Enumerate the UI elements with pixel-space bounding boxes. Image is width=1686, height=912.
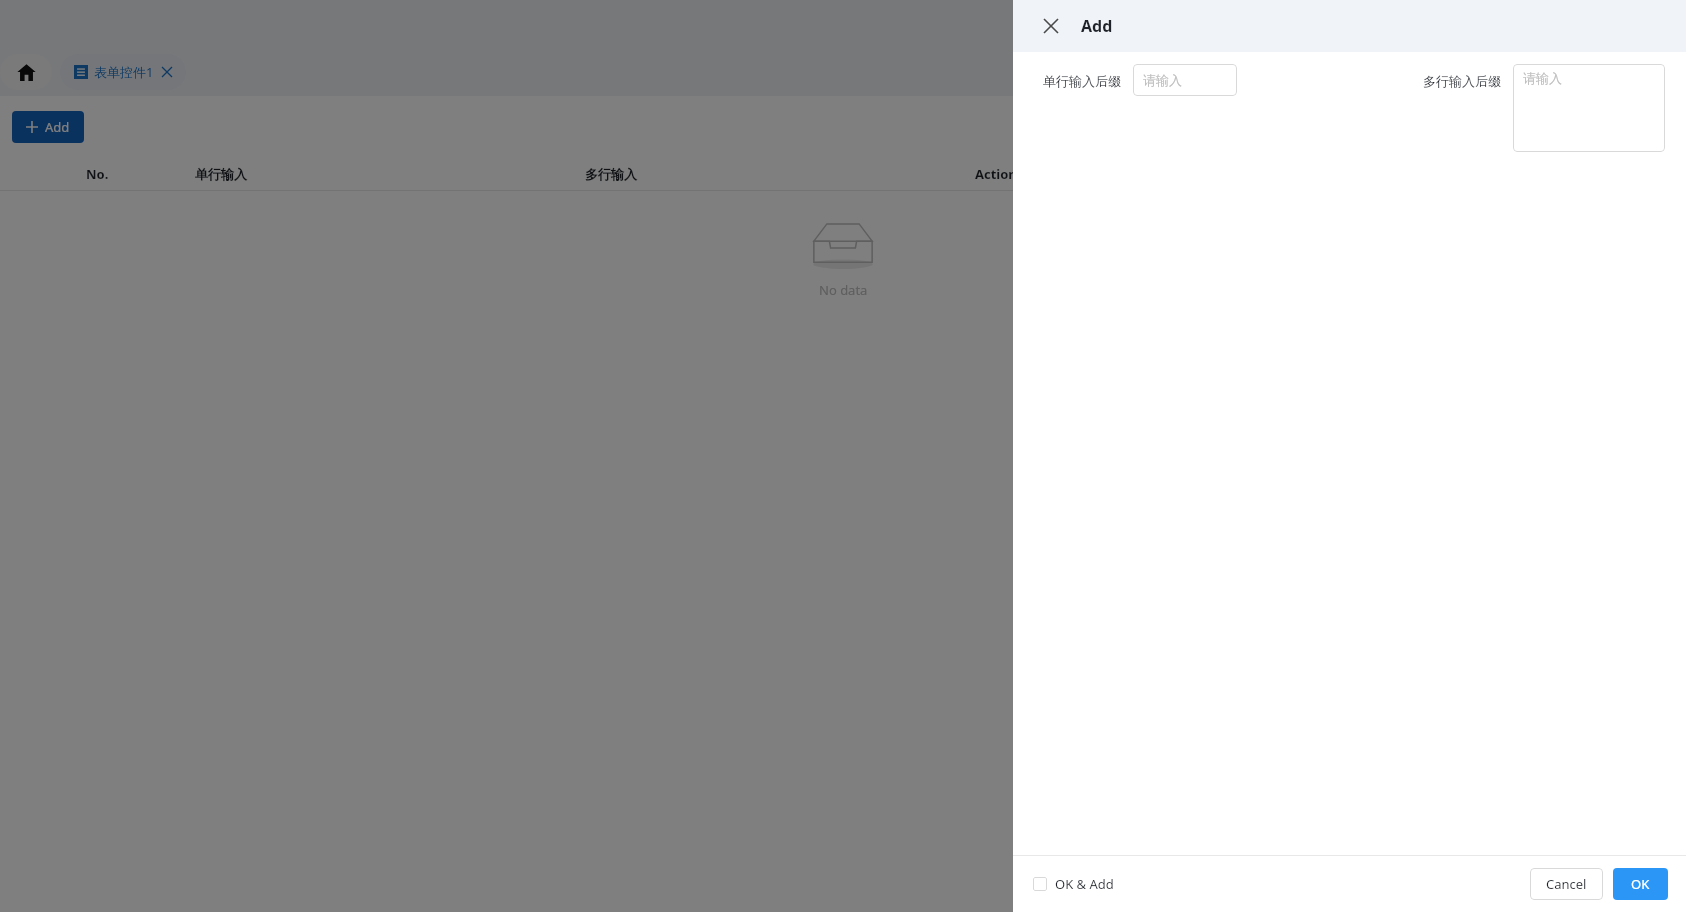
button[interactable]: Close [1037,12,1065,40]
staticText: 多行输入 [585,166,637,182]
staticText: OK [1631,875,1650,893]
button[interactable]: Add [12,111,84,143]
button[interactable]: 请输入 [1133,64,1237,96]
button[interactable]: OK [1613,868,1668,900]
staticText: 单行输入 [195,166,247,182]
staticText: No. [86,165,109,183]
button[interactable]: Home [0,54,52,90]
staticText: Add [1081,15,1113,37]
staticText: No data [819,281,868,299]
staticText: Actions [975,165,1024,183]
staticText: Add [45,118,70,136]
staticText: 单行输入后缀 [1043,73,1121,89]
staticText: Cancel [1546,875,1587,893]
button[interactable]: 请输入 [1513,64,1665,152]
staticText: 表单控件1 [94,63,154,81]
button[interactable]: 表单控件1 [60,54,186,90]
button[interactable]: OK & Add [1033,875,1114,893]
staticText: 请输入 [1143,72,1182,88]
staticText: 请输入 [1523,70,1562,86]
staticText: OK & Add [1055,875,1114,893]
button[interactable]: Cancel [1530,868,1603,900]
staticText: 多行输入后缀 [1423,73,1501,89]
